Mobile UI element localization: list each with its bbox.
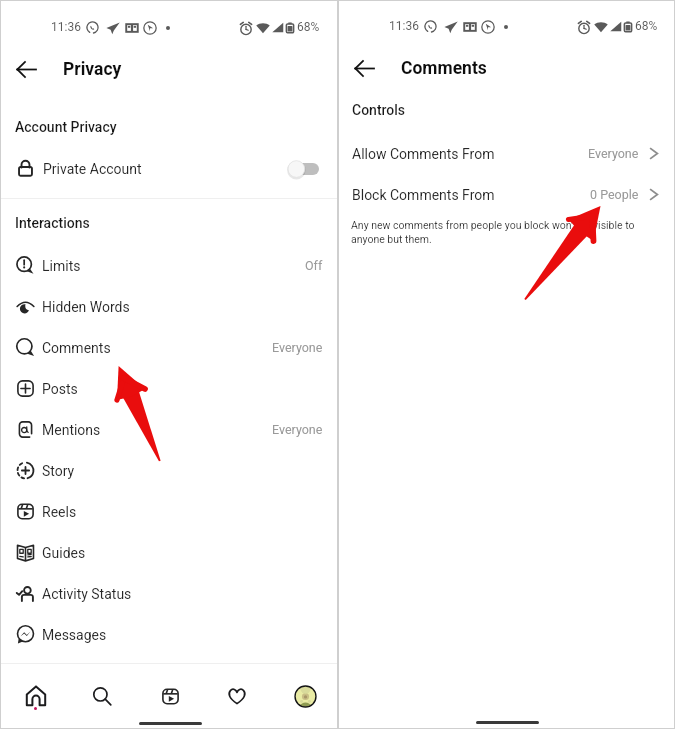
staticText: Hidden Words <box>42 299 130 315</box>
staticText: Reels <box>42 504 77 520</box>
button[interactable]: Messages <box>1 614 337 655</box>
button[interactable]: Allow Comments From <box>339 133 675 174</box>
staticText: Controls <box>352 102 406 118</box>
button[interactable]: Private Account <box>1 148 337 189</box>
button[interactable]: Back <box>6 49 46 89</box>
staticText: Activity Status <box>42 586 132 602</box>
button[interactable]: Limits <box>1 245 337 286</box>
staticText: Comments <box>42 340 111 356</box>
staticText: Allow Comments From <box>352 146 495 162</box>
button[interactable]: Posts <box>1 368 337 409</box>
button[interactable]: Hidden Words <box>1 286 337 327</box>
staticText: Guides <box>42 545 86 561</box>
staticText: Private Account <box>43 161 142 177</box>
staticText: Privacy <box>63 59 122 80</box>
button[interactable]: Reels <box>147 672 193 720</box>
button[interactable]: Back <box>344 48 384 88</box>
staticText: Block Comments From <box>352 187 495 203</box>
staticText: 68% <box>635 19 658 33</box>
staticText: 11:36 <box>389 19 419 33</box>
staticText: Any new comments from people you block w… <box>351 219 646 245</box>
staticText: Messages <box>42 627 107 643</box>
staticText: Everyone <box>272 340 323 355</box>
staticText: 11:36 <box>51 20 81 34</box>
button[interactable]: Profile <box>282 672 328 720</box>
staticText: Mentions <box>42 422 101 438</box>
staticText: 0 People <box>590 187 639 202</box>
button[interactable]: Activity Status <box>1 573 337 614</box>
staticText: 68% <box>297 20 320 34</box>
staticText: Account Privacy <box>15 119 117 135</box>
staticText: Story <box>42 463 75 479</box>
staticText: Limits <box>42 258 81 274</box>
staticText: Everyone <box>588 146 639 161</box>
button[interactable]: Mentions <box>1 409 337 450</box>
staticText: Comments <box>401 58 487 79</box>
staticText: Interactions <box>15 215 90 231</box>
staticText: Posts <box>42 381 78 397</box>
staticText: Everyone <box>272 422 323 437</box>
staticText: Off <box>305 258 323 273</box>
button[interactable]: Home <box>13 672 59 720</box>
button[interactable]: Block Comments From <box>339 174 675 215</box>
button[interactable]: Guides <box>1 532 337 573</box>
button[interactable]: Comments <box>1 327 337 368</box>
button[interactable]: Search <box>79 672 125 720</box>
button[interactable]: Reels <box>1 491 337 532</box>
button[interactable]: Activity <box>214 672 260 720</box>
button[interactable]: Story <box>1 450 337 491</box>
